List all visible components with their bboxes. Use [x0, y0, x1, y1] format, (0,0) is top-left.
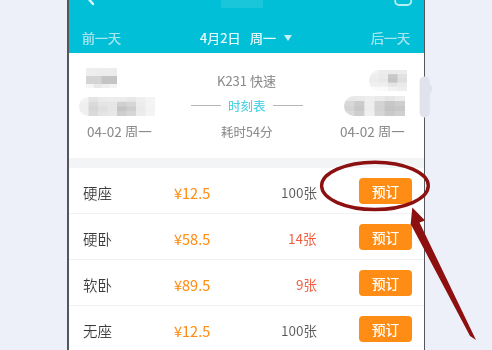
staticText: 04-02 周一	[340, 121, 405, 137]
staticText: 周一	[250, 28, 277, 47]
staticText: 后一天	[371, 28, 411, 47]
button[interactable]: Calendar	[387, 0, 421, 20]
staticText: 4月2日	[200, 28, 241, 47]
staticText: 100张	[281, 320, 317, 340]
button[interactable]: 后一天	[324, 22, 424, 53]
button[interactable]: 前一天	[69, 22, 173, 53]
staticText: 前一天	[82, 28, 122, 47]
button[interactable]: 预订	[359, 224, 412, 250]
staticText: ¥58.5	[174, 228, 211, 249]
staticText: 无座	[83, 320, 112, 341]
button[interactable]: Back	[75, 0, 113, 22]
button[interactable]: 预订	[359, 270, 412, 296]
staticText: ¥12.5	[174, 182, 211, 203]
staticText: 9张	[296, 274, 317, 294]
button[interactable]: 4月2日	[200, 22, 292, 53]
button[interactable]: 硬卧	[69, 214, 424, 260]
button[interactable]: 软卧	[69, 260, 424, 306]
staticText: 14张	[288, 228, 317, 248]
button[interactable]: 硬座	[69, 168, 424, 214]
staticText: 04-02 周一	[87, 121, 152, 137]
staticText: 预订	[372, 273, 399, 293]
button[interactable]: 时刻表	[228, 96, 266, 114]
button[interactable]: 预订	[359, 178, 412, 204]
staticText: 硬座	[83, 182, 112, 203]
button[interactable]: 预订	[359, 316, 412, 342]
staticText: ¥89.5	[174, 274, 211, 295]
staticText: ¥12.5	[174, 320, 211, 341]
button[interactable]: 无座	[69, 306, 424, 350]
staticText: 100张	[281, 182, 317, 202]
staticText: 预订	[372, 227, 399, 247]
staticText: 硬卧	[83, 228, 112, 249]
staticText: 预订	[372, 181, 399, 201]
staticText: 软卧	[83, 274, 112, 295]
staticText: K231 快速	[217, 71, 276, 90]
staticText: 耗时54分	[221, 122, 273, 140]
staticText: 预订	[372, 319, 399, 339]
